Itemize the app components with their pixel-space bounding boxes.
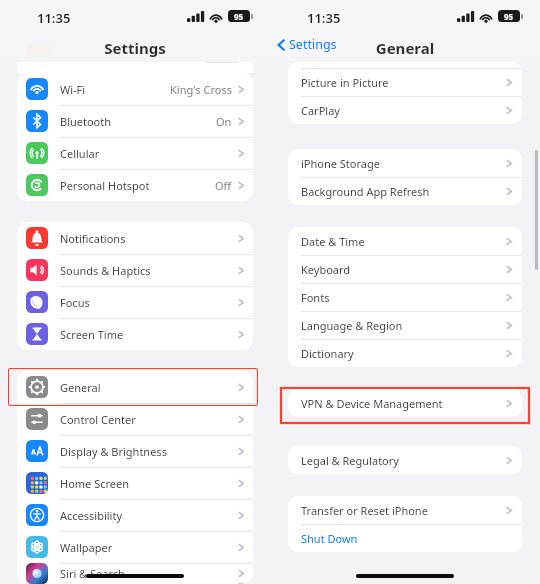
button[interactable]: Shut Down [288,524,522,552]
staticText: Cellular [60,146,100,161]
button[interactable]: VPN & Device Management [288,389,522,417]
staticText: 11:35 [37,9,71,27]
staticText: Wallpaper [60,540,113,555]
button[interactable]: Date & Time [288,227,522,255]
staticText: Shut Down [301,531,358,546]
staticText: Wi-Fi [60,82,86,97]
button[interactable]: Background App Refresh [288,177,522,205]
staticText: Dictionary [301,346,354,361]
button[interactable]: Siri & Search [17,563,253,584]
staticText: Settings [0,38,270,58]
staticText: Off [215,178,232,193]
staticText: Siri & Search [60,566,125,581]
staticText: Sounds & Haptics [60,263,151,278]
button[interactable]: iPhone Storage [288,149,522,177]
staticText: Notifications [60,231,126,246]
staticText: Control Center [60,412,136,427]
staticText: Bluetooth [60,114,112,129]
staticText: Accessibility [60,508,123,523]
staticText: VPN & Device Management [301,396,443,411]
staticText: Transfer or Reset iPhone [301,503,428,518]
staticText: King's Cross [170,82,232,97]
staticText: Keyboard [301,262,351,277]
button[interactable]: Bluetooth [17,105,253,137]
button[interactable]: Notifications [17,222,253,254]
staticText: Home Screen [60,476,130,491]
staticText: Language & Region [301,318,403,333]
staticText: Date & Time [301,234,365,249]
staticText: Picture in Picture [301,75,389,90]
staticText: Display & Brightness [60,444,167,459]
staticText: 95 [504,11,514,22]
button[interactable]: Keyboard [288,255,522,283]
button[interactable]: Cellular [17,137,253,169]
button[interactable]: Sounds & Haptics [17,254,253,286]
button[interactable]: Wallpaper [17,531,253,563]
button[interactable]: Control Center [17,403,253,435]
staticText: General [270,38,540,58]
button[interactable]: Transfer or Reset iPhone [288,496,522,524]
button[interactable]: Picture in Picture [288,68,522,96]
staticText: General [60,380,101,395]
staticText: Screen Time [60,327,124,342]
staticText: CarPlay [301,103,340,118]
button[interactable]: Accessibility [17,499,253,531]
staticText: iPhone Storage [301,156,380,171]
button[interactable]: Wi-Fi [17,73,253,105]
button[interactable]: General [17,371,253,403]
button[interactable]: Display & Brightness [17,435,253,467]
staticText: Legal & Regulatory [301,453,399,468]
staticText: Fonts [301,290,330,305]
staticText: On [216,114,232,129]
button[interactable]: Language & Region [288,311,522,339]
button[interactable]: CarPlay [288,96,522,124]
staticText: 95 [234,11,244,22]
button[interactable]: Legal & Regulatory [288,446,522,474]
button[interactable]: Personal Hotspot [17,169,253,201]
staticText: Settings [289,36,337,53]
staticText: Background App Refresh [301,184,430,199]
button[interactable]: Screen Time [17,318,253,350]
button[interactable]: Fonts [288,283,522,311]
button[interactable]: Settings [278,36,337,53]
button[interactable]: Focus [17,286,253,318]
staticText: Personal Hotspot [60,178,150,193]
button[interactable]: Dictionary [288,339,522,367]
staticText: Focus [60,295,90,310]
button[interactable]: Home Screen [17,467,253,499]
staticText: 11:35 [307,9,341,27]
